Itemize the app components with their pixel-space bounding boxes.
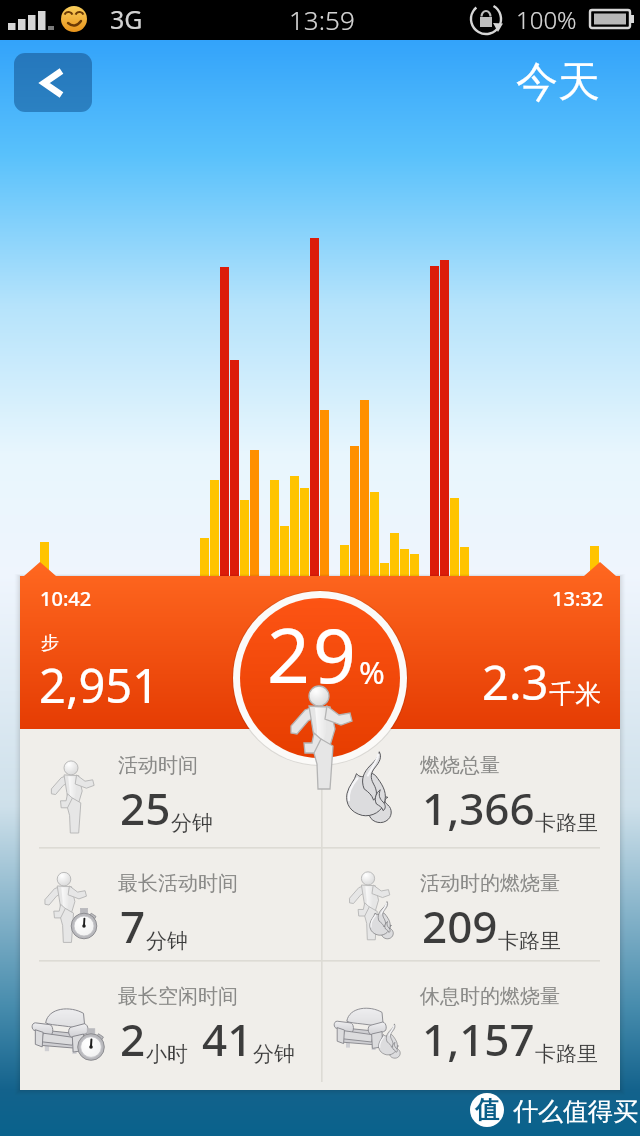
staticText: 分钟 [253,1041,295,1067]
staticText: 最长活动时间 [118,871,238,896]
button[interactable]: 休息时的燃烧量 [302,960,620,1078]
button[interactable]: 今天 [492,52,620,114]
staticText: 13:59 [289,2,355,37]
button[interactable]: 最长空闲时间 [0,960,318,1078]
staticText: 29 [267,603,359,705]
staticText: 3G [110,2,143,36]
staticText: 209 [422,896,498,956]
staticText: 值 [475,1095,499,1125]
staticText: 分钟 [146,928,188,954]
staticText: 41 [202,1009,253,1069]
button[interactable]: Back [14,53,92,112]
staticText: 活动时间 [118,753,198,778]
staticText: 今天 [516,56,600,109]
staticText: 卡路里 [498,928,561,954]
staticText: 活动时的燃烧量 [420,871,560,896]
staticText: 2,951 [39,653,160,717]
staticText: 2.3 [482,650,549,714]
button[interactable]: 燃烧总量 [302,729,620,847]
staticText: 100% [516,3,577,36]
button[interactable]: 29 [232,590,408,766]
staticText: 休息时的燃烧量 [420,984,560,1009]
staticText: 千米 [549,678,601,711]
staticText: 最长空闲时间 [118,984,238,1009]
staticText: 燃烧总量 [420,753,500,778]
staticText: 1,157 [422,1009,535,1069]
staticText: 10:42 [40,585,92,612]
staticText: 步 [41,632,59,655]
staticText: 2 [120,1009,146,1069]
staticText: 卡路里 [535,1041,598,1067]
staticText: 小时 [146,1041,188,1067]
button[interactable]: 活动时间 [0,729,318,847]
staticText: 分钟 [171,810,213,836]
button[interactable]: 最长活动时间 [0,847,318,965]
staticText: 13:32 [552,585,604,612]
staticText: 7 [120,896,146,956]
button[interactable]: 活动时的燃烧量 [302,847,620,965]
staticText: 1,366 [422,778,535,838]
staticText: 什么值得买 [513,1096,638,1127]
staticText: 25 [120,778,171,838]
staticText: 卡路里 [535,810,598,836]
staticText: % [359,651,385,693]
